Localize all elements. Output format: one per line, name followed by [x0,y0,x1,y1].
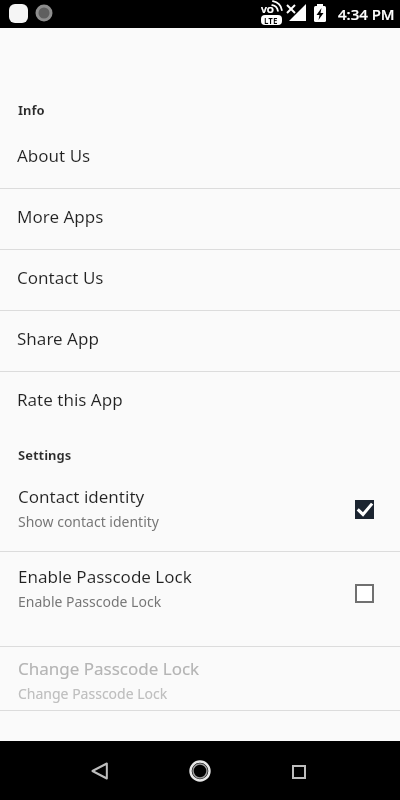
button[interactable]: Contact identity [0,464,400,551]
staticText: More Apps [17,205,104,228]
button[interactable] [182,753,218,789]
button[interactable]: Rate this App [0,372,400,432]
button[interactable]: Change Passcode Lock [0,647,400,710]
button[interactable]: Share App [0,311,400,371]
button[interactable]: About Us [0,128,400,188]
staticText: LTE [264,15,278,26]
staticText: 4:34 PM [338,4,395,24]
staticText: Show contact identity [18,512,159,531]
staticText: About Us [17,144,91,167]
staticText: Rate this App [17,388,123,411]
staticText: Enable Passcode Lock [18,592,162,611]
staticText: VO [261,3,274,15]
staticText: Share App [17,327,99,350]
button[interactable] [82,753,118,789]
staticText: Contact Us [17,266,104,289]
staticText: Enable Passcode Lock [18,565,192,588]
button[interactable]: Contact Us [0,250,400,310]
button[interactable]: More Apps [0,189,400,249]
staticText: Contact identity [18,485,145,508]
staticText: Settings [18,446,72,464]
staticText: Change Passcode Lock [18,657,200,680]
button[interactable]: Enable Passcode Lock [0,552,400,646]
button[interactable] [281,754,317,790]
staticText: Info [18,101,45,119]
staticText: Change Passcode Lock [18,684,168,703]
